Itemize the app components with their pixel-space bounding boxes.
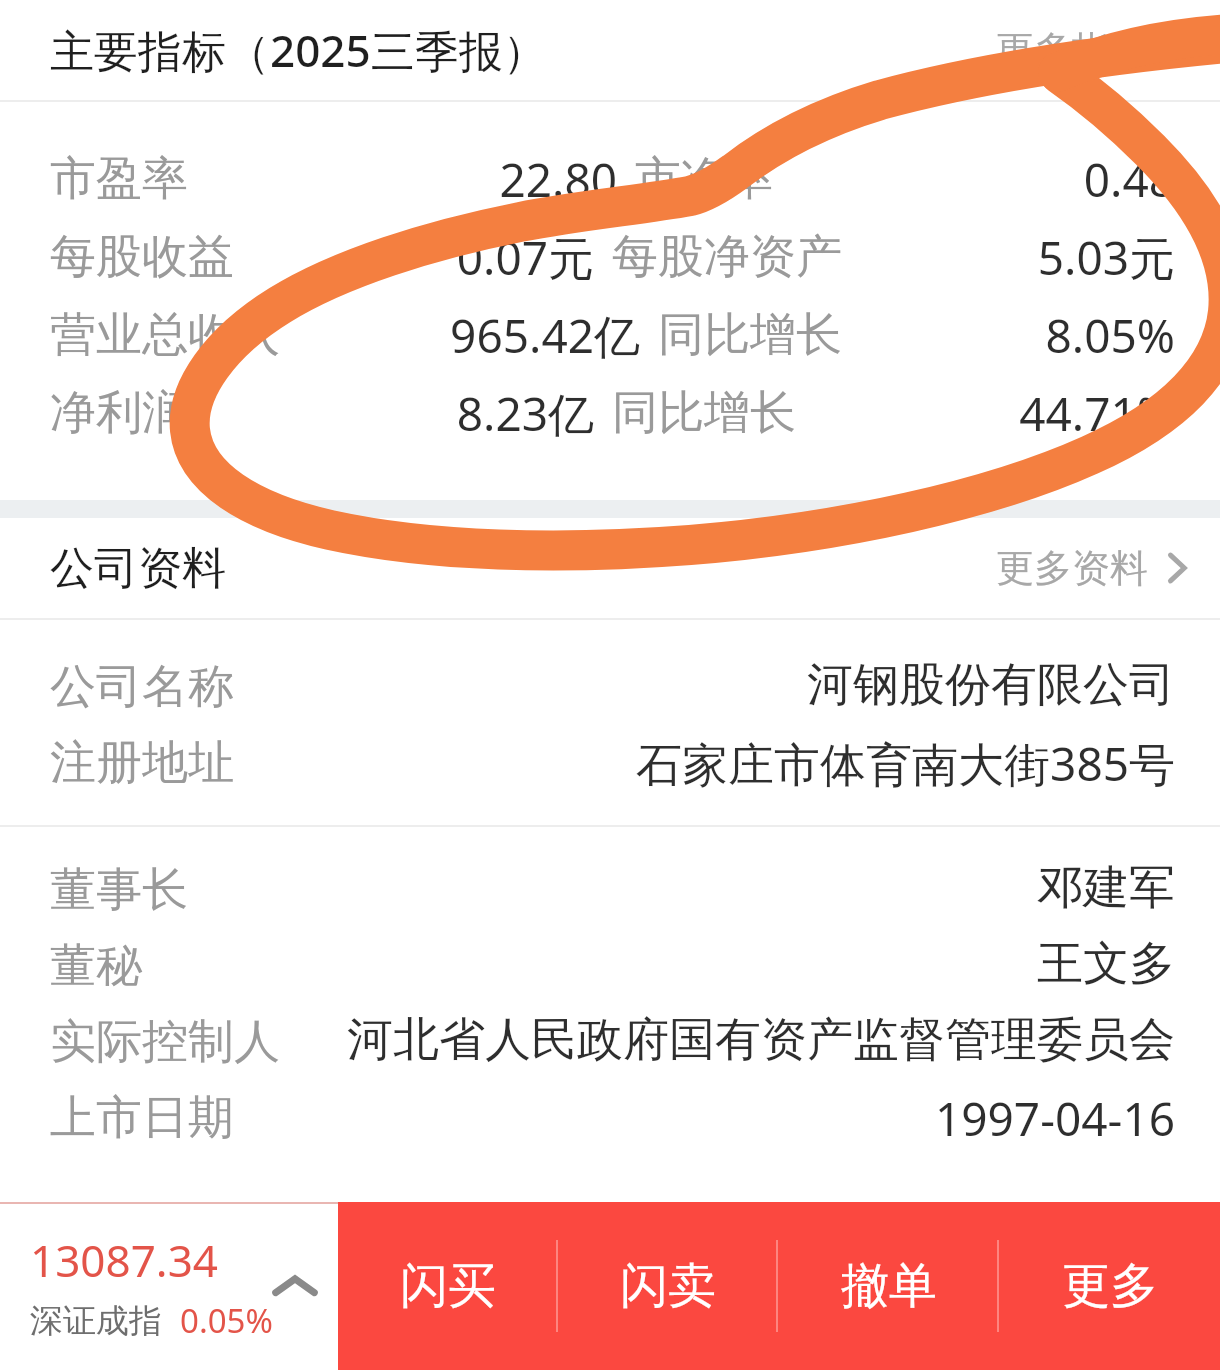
button[interactable]: 更多: [999, 1202, 1220, 1370]
staticText: 8.05%: [842, 304, 1175, 367]
button[interactable]: 市盈率: [0, 140, 1220, 218]
staticText: 闪卖: [620, 1256, 716, 1316]
button[interactable]: 公司名称: [0, 648, 1220, 724]
staticText: 1997-04-16: [258, 1087, 1175, 1150]
staticText: 同比增长: [612, 384, 796, 442]
staticText: 公司资料: [50, 541, 226, 596]
button[interactable]: 董事长: [0, 851, 1220, 927]
staticText: 河钢股份有限公司: [258, 656, 1175, 714]
staticText: 实际控制人: [50, 1013, 280, 1071]
staticText: 王文多: [166, 935, 1175, 993]
staticText: 0.05%: [180, 1298, 273, 1343]
staticText: 主要指标（2025三季报）: [50, 20, 547, 80]
button[interactable]: 公司资料: [0, 518, 1220, 618]
staticText: 深证成指: [30, 1300, 162, 1342]
button[interactable]: 闪买: [338, 1202, 558, 1370]
staticText: 董秘: [50, 937, 142, 995]
staticText: 更多资料: [996, 544, 1148, 592]
staticText: 22.80: [188, 148, 617, 211]
button[interactable]: 主要指标（2025三季报）: [0, 0, 1220, 100]
staticText: 石家庄市体育南大街385号: [258, 732, 1175, 795]
staticText: 965.42亿: [280, 304, 640, 367]
staticText: 44.71%: [796, 382, 1175, 445]
button[interactable]: 撤单: [778, 1202, 999, 1370]
staticText: 闪买: [400, 1256, 496, 1316]
staticText: 公司名称: [50, 658, 234, 716]
staticText: 每股净资产: [612, 228, 842, 286]
staticText: 每股收益: [50, 228, 234, 286]
staticText: 净利润: [50, 384, 188, 442]
staticText: 更多: [1062, 1256, 1158, 1316]
other: 展开指数: [272, 1271, 318, 1301]
button[interactable]: 每股收益: [0, 218, 1220, 296]
button[interactable]: 上市日期: [0, 1079, 1220, 1158]
staticText: 上市日期: [50, 1089, 234, 1147]
button[interactable]: 闪卖: [558, 1202, 778, 1370]
staticText: 0.07元: [234, 226, 594, 289]
button[interactable]: 净利润: [0, 374, 1220, 452]
staticText: 营业总收入: [50, 306, 280, 364]
staticText: 更多指标: [996, 26, 1148, 74]
staticText: 撤单: [841, 1256, 937, 1316]
staticText: 同比增长: [658, 306, 842, 364]
staticText: 市净率: [635, 150, 773, 208]
button[interactable]: 13087.34: [0, 1202, 338, 1370]
button[interactable]: 实际控制人: [0, 1003, 1220, 1079]
staticText: 邓建军: [212, 859, 1175, 917]
staticText: 8.23亿: [188, 382, 594, 445]
staticText: 5.03元: [842, 226, 1175, 289]
staticText: 注册地址: [50, 734, 234, 792]
button[interactable]: 董秘: [0, 927, 1220, 1003]
button[interactable]: 注册地址: [0, 724, 1220, 803]
staticText: 河北省人民政府国有资产监督管理委员会: [304, 1011, 1175, 1069]
button[interactable]: 营业总收入: [0, 296, 1220, 374]
staticText: 0.48: [773, 148, 1175, 211]
staticText: 董事长: [50, 861, 188, 919]
staticText: 市盈率: [50, 150, 188, 208]
staticText: 13087.34: [30, 1230, 218, 1290]
